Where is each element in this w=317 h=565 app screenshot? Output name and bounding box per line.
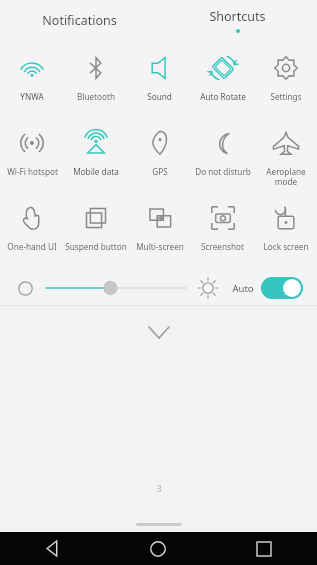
- button[interactable]: Screenshot: [191, 193, 254, 268]
- button[interactable]: Do not disturb: [191, 118, 254, 193]
- staticText: YNWA: [20, 91, 44, 102]
- staticText: GPS: [152, 166, 168, 177]
- button[interactable]: Bluetooth: [64, 43, 128, 118]
- button[interactable]: Lock screen: [254, 193, 317, 268]
- button[interactable]: Auto: [232, 277, 303, 299]
- button[interactable]: Recent apps: [211, 532, 317, 565]
- button[interactable]: Mobile data: [64, 118, 128, 193]
- button[interactable]: Settings: [254, 43, 317, 118]
- staticText: Shortcuts: [209, 8, 266, 25]
- staticText: Notifications: [42, 12, 117, 29]
- staticText: One-hand UI: [7, 241, 57, 252]
- button[interactable]: Wi-Fi hotspot: [0, 118, 64, 193]
- staticText: Suspend button: [65, 241, 127, 252]
- button[interactable]: Multi-screen: [128, 193, 191, 268]
- button[interactable]: One-hand UI: [0, 193, 64, 268]
- button[interactable]: Suspend button: [64, 193, 128, 268]
- staticText: Sound: [147, 91, 172, 102]
- button[interactable]: Back: [0, 532, 105, 565]
- staticText: Lock screen: [263, 241, 309, 252]
- button[interactable]: Notifications: [0, 0, 158, 40]
- button[interactable]: Sound: [128, 43, 191, 118]
- button[interactable]: Aeroplane mode: [254, 118, 317, 193]
- button[interactable]: Minimum brightness: [14, 277, 36, 299]
- staticText: Wi-Fi hotspot: [7, 166, 58, 177]
- staticText: Bluetooth: [77, 91, 115, 102]
- staticText: Mobile data: [73, 166, 119, 177]
- staticText: 3: [156, 482, 162, 494]
- button[interactable]: Auto Rotate: [191, 43, 254, 118]
- button[interactable]: Brightness: [46, 274, 186, 302]
- button[interactable]: Shortcuts: [158, 0, 317, 40]
- button[interactable]: GPS: [128, 118, 191, 193]
- button[interactable]: Collapse: [137, 320, 181, 344]
- button[interactable]: Maximum brightness: [196, 276, 220, 300]
- staticText: Settings: [270, 91, 302, 102]
- staticText: Multi-screen: [136, 241, 184, 252]
- button[interactable]: YNWA: [0, 43, 64, 118]
- staticText: Do not disturb: [195, 166, 251, 177]
- staticText: Aeroplane mode: [266, 166, 306, 187]
- staticText: Auto Rotate: [200, 91, 246, 102]
- staticText: Screenshot: [201, 241, 244, 252]
- button[interactable]: Home: [105, 532, 211, 565]
- staticText: Auto: [232, 282, 254, 295]
